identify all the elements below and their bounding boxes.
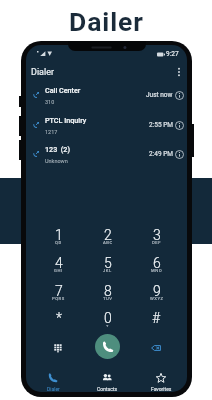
staticText: 1217 <box>45 129 58 135</box>
staticText: Dialer <box>47 386 60 392</box>
staticText: DEF <box>152 240 162 245</box>
button[interactable]: 5 <box>83 255 132 282</box>
staticText: 0 <box>104 310 112 326</box>
staticText: 123 (2) <box>45 145 70 153</box>
button[interactable]: Contacts <box>83 371 131 392</box>
button[interactable]: 2 <box>83 227 132 254</box>
staticText: 3 <box>153 227 161 243</box>
staticText: MNO <box>151 268 163 273</box>
staticText: GHI <box>54 268 63 273</box>
staticText: PTCL Inquiry <box>45 116 87 124</box>
button[interactable]: Backspace <box>145 337 167 359</box>
staticText: WXYZ <box>150 296 164 301</box>
staticText: JKL <box>103 268 112 273</box>
button[interactable]: Call Center <box>26 84 187 106</box>
button[interactable]: Favorites <box>137 371 185 392</box>
staticText: PQRS <box>52 296 65 301</box>
button[interactable]: 7 <box>34 283 83 310</box>
button[interactable]: * <box>34 310 83 337</box>
button[interactable]: 123 (2) <box>26 143 187 165</box>
staticText: Dailer <box>69 6 144 37</box>
button[interactable]: 4 <box>34 255 83 282</box>
staticText: 4 <box>55 255 63 271</box>
staticText: Dialer <box>31 67 55 78</box>
staticText: # <box>152 310 161 326</box>
staticText: Contacts <box>97 386 118 392</box>
staticText: 310 <box>45 99 55 105</box>
staticText: QD <box>55 240 62 245</box>
staticText: Call Center <box>45 86 81 94</box>
button[interactable]: More options <box>172 65 186 79</box>
button[interactable]: # <box>132 310 181 337</box>
staticText: Unknown <box>45 158 68 164</box>
staticText: TUV <box>103 296 113 301</box>
staticText: + <box>106 323 109 328</box>
staticText: 2:55 PM <box>149 121 173 129</box>
staticText: Just now <box>146 91 173 99</box>
button[interactable]: Call <box>95 334 120 359</box>
staticText: * <box>56 310 62 326</box>
button[interactable]: Keypad <box>47 336 69 358</box>
button[interactable]: Call details <box>173 119 185 131</box>
staticText: ABC <box>103 240 113 245</box>
staticText: 9:27 <box>166 50 179 58</box>
staticText: 5 <box>104 255 112 271</box>
staticText: 7 <box>55 283 63 299</box>
staticText: 8 <box>104 283 112 299</box>
button[interactable]: 3 <box>132 227 181 254</box>
staticText: 2:49 PM <box>149 150 173 158</box>
button[interactable]: 8 <box>83 283 132 310</box>
staticText: 6 <box>153 255 161 271</box>
staticText: 9 <box>153 283 161 299</box>
button[interactable]: Dialer <box>29 371 77 392</box>
button[interactable]: 1 <box>34 227 83 254</box>
staticText: 1 <box>55 227 63 243</box>
button[interactable]: Call details <box>173 148 185 160</box>
button[interactable]: PTCL Inquiry <box>26 114 187 136</box>
staticText: 2 <box>104 227 112 243</box>
button[interactable]: Call details <box>173 89 185 101</box>
button[interactable]: 6 <box>132 255 181 282</box>
staticText: Favorites <box>151 386 172 392</box>
button[interactable]: 0 <box>83 310 132 337</box>
button[interactable]: 9 <box>132 283 181 310</box>
